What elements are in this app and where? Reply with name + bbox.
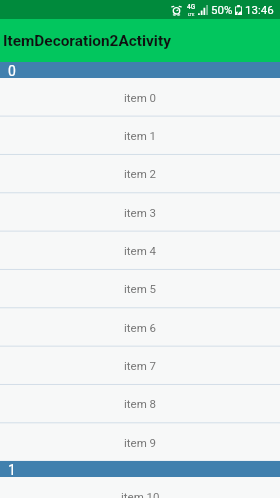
button[interactable]: 0 bbox=[0, 62, 280, 78]
staticText: item 9 bbox=[124, 436, 157, 449]
button[interactable]: item 5 bbox=[0, 269, 280, 308]
staticText: item 2 bbox=[124, 167, 157, 180]
staticText: item 5 bbox=[124, 282, 157, 295]
staticText: item 10 bbox=[121, 490, 160, 498]
button[interactable]: item 4 bbox=[0, 231, 280, 269]
other: Alarm set bbox=[172, 5, 181, 15]
staticText: item 3 bbox=[124, 206, 157, 219]
button[interactable]: item 2 bbox=[0, 154, 280, 193]
staticText: 50% bbox=[211, 3, 233, 16]
button[interactable]: item 10 bbox=[0, 477, 280, 498]
staticText: ItemDecoration2Activity bbox=[3, 32, 171, 50]
staticText: 13:46 bbox=[245, 3, 274, 16]
staticText: 0 bbox=[8, 63, 16, 78]
staticText: item 1 bbox=[124, 129, 157, 142]
button[interactable]: item 6 bbox=[0, 308, 280, 346]
button[interactable]: item 1 bbox=[0, 116, 280, 154]
button[interactable]: item 3 bbox=[0, 193, 280, 231]
staticText: 4G bbox=[187, 3, 196, 11]
staticText: item 7 bbox=[124, 359, 157, 372]
button[interactable]: item 8 bbox=[0, 384, 280, 423]
staticText: item 6 bbox=[124, 321, 157, 334]
button[interactable]: item 9 bbox=[0, 423, 280, 461]
staticText: item 0 bbox=[124, 91, 157, 104]
other: Battery charging bbox=[235, 5, 242, 15]
staticText: item 4 bbox=[124, 244, 157, 257]
button[interactable]: item 0 bbox=[0, 78, 280, 116]
staticText: item 8 bbox=[124, 397, 157, 410]
staticText: 1 bbox=[8, 462, 16, 477]
button[interactable]: 1 bbox=[0, 461, 280, 477]
other: Mobile signal strength bbox=[198, 5, 208, 15]
staticText: LTE bbox=[188, 12, 195, 17]
button[interactable]: item 7 bbox=[0, 346, 280, 384]
